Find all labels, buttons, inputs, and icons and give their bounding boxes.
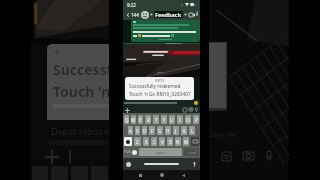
button[interactable]: Z: [134, 137, 141, 146]
button[interactable]: Call: [197, 10, 198, 19]
staticText: V: [161, 139, 164, 145]
staticText: B: [169, 139, 172, 145]
staticText: X: [145, 139, 148, 145]
button[interactable]: Video call: [187, 10, 196, 19]
button[interactable]: B: [167, 137, 173, 146]
button[interactable]: C: [151, 137, 157, 146]
staticText: I: [179, 117, 181, 123]
button[interactable]: Recents: [136, 171, 144, 179]
staticText: W: [131, 117, 136, 123]
staticText: RM10: [155, 78, 165, 83]
button[interactable]: O: [185, 115, 191, 124]
staticText: Successfully redeemed: [129, 83, 181, 90]
staticText: Y: [163, 117, 166, 123]
staticText: space: [156, 150, 166, 155]
button[interactable]: send: [184, 148, 199, 156]
button[interactable]: Emoji: [125, 161, 132, 168]
button[interactable]: Sticker: [182, 107, 187, 112]
staticText: A: [129, 128, 132, 134]
button[interactable]: Q: [124, 115, 129, 124]
button[interactable]: N: [175, 137, 181, 146]
button[interactable]: Shift: [124, 137, 132, 146]
button[interactable]: Home: [158, 171, 166, 179]
button[interactable]: T: [153, 115, 159, 124]
button[interactable]: G: [157, 126, 163, 135]
staticText: M: [184, 139, 189, 145]
button[interactable]: E: [138, 115, 143, 124]
staticText: Successf: [53, 60, 109, 79]
button[interactable]: P: [193, 115, 199, 124]
button[interactable]: Attach: [124, 107, 130, 113]
staticText: Z: [136, 139, 139, 145]
staticText: Touch 'n: [53, 82, 109, 101]
button[interactable]: Camera: [241, 149, 255, 163]
staticText: 08:45 PM: [210, 131, 236, 139]
button[interactable]: Voice input: [191, 161, 198, 168]
staticText: Dapat tebus d: [51, 125, 109, 137]
staticText: Touch 'n Go RM10_0283407: [129, 91, 191, 98]
button[interactable]: I: [177, 115, 183, 124]
staticText: R: [147, 117, 150, 123]
button[interactable]: Back: [179, 171, 187, 179]
staticText: P: [195, 117, 198, 123]
staticText: G: [158, 128, 162, 134]
staticText: C: [153, 139, 156, 145]
staticText: J: [175, 128, 177, 134]
staticText: L: [191, 128, 194, 134]
staticText: 144: [131, 12, 139, 18]
button[interactable]: U: [169, 115, 175, 124]
staticText: 9:22: [127, 2, 136, 8]
button[interactable]: Voice message: [194, 107, 199, 112]
button[interactable]: J: [173, 126, 179, 135]
button[interactable]: Sticker: [219, 149, 233, 163]
staticText: T: [155, 117, 158, 123]
button[interactable]: R: [145, 115, 151, 124]
button[interactable]: X: [143, 137, 149, 146]
button[interactable]: K: [181, 126, 187, 135]
button[interactable]: Y: [161, 115, 167, 124]
button[interactable]: space: [139, 148, 182, 156]
button[interactable]: Attach: [43, 148, 61, 166]
button[interactable]: D: [142, 126, 147, 135]
staticText: ?123: [124, 150, 131, 154]
staticText: Q: [125, 117, 129, 123]
staticText: D: [143, 128, 147, 134]
staticText: K: [183, 128, 186, 134]
button[interactable]: Symbols: [123, 148, 131, 156]
button[interactable]: Voice message: [262, 149, 276, 163]
button[interactable]: Emoji: [131, 148, 138, 156]
staticText: U: [170, 117, 174, 123]
button[interactable]: L: [189, 126, 195, 135]
button[interactable]: A: [128, 126, 133, 135]
button[interactable]: H: [165, 126, 171, 135]
button[interactable]: Back: [124, 11, 131, 18]
staticText: send: [188, 150, 196, 155]
button[interactable]: F: [149, 126, 155, 135]
staticText: S: [136, 128, 139, 134]
staticText: E: [139, 117, 142, 123]
staticText: O: [186, 117, 190, 123]
staticText: Feedback: [155, 11, 182, 18]
button[interactable]: Camera: [188, 107, 193, 112]
staticText: H: [166, 128, 170, 134]
button[interactable]: Backspace: [191, 137, 199, 146]
button[interactable]: M: [183, 137, 189, 146]
button[interactable]: W: [131, 115, 136, 124]
staticText: F: [151, 128, 154, 134]
button[interactable]: S: [135, 126, 140, 135]
staticText: N: [176, 139, 180, 145]
button[interactable]: V: [159, 137, 165, 146]
